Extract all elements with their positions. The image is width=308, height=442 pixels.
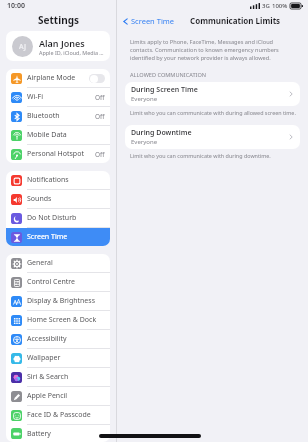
staticText: Notifications	[27, 175, 105, 185]
staticText: Limit who you can communicate with durin…	[130, 152, 271, 159]
staticText: Mobile Data	[27, 130, 105, 140]
staticText: 100%	[272, 2, 288, 10]
staticText: 3G	[262, 2, 270, 10]
button[interactable]: Notifications	[6, 171, 110, 189]
staticText: Bluetooth	[27, 111, 95, 121]
staticText: Battery	[27, 429, 105, 439]
button[interactable]: Wi-Fi	[6, 88, 110, 106]
staticText: AJ	[19, 42, 26, 52]
staticText: Communication Limits	[190, 15, 281, 26]
button[interactable]: AJ	[6, 31, 110, 61]
staticText: Everyone	[131, 138, 158, 146]
button[interactable]: Bluetooth	[6, 107, 110, 125]
staticText: 10:00	[7, 1, 25, 11]
staticText: Do Not Disturb	[27, 213, 105, 223]
staticText: Accessibility	[27, 334, 105, 344]
button[interactable]: Screen Time	[120, 13, 177, 29]
staticText: Screen Time	[27, 232, 105, 242]
button[interactable]: Apple Pencil	[6, 387, 110, 405]
staticText: Sounds	[27, 194, 105, 204]
staticText: Home Screen & Dock	[27, 315, 105, 325]
staticText: Apple Pencil	[27, 391, 105, 401]
staticText: Off	[95, 150, 105, 159]
staticText: During Screen Time	[131, 85, 198, 95]
staticText: Display & Brightness	[27, 296, 105, 306]
button[interactable]: Face ID & Passcode	[6, 406, 110, 424]
staticText: Face ID & Passcode	[27, 410, 105, 420]
staticText: Personal Hotspot	[27, 149, 95, 159]
staticText: ALLOWED COMMUNICATION	[130, 71, 207, 79]
staticText: Wi-Fi	[27, 92, 95, 102]
staticText: During Downtime	[131, 128, 192, 138]
button[interactable]: Do Not Disturb	[6, 209, 110, 227]
staticText: Settings	[38, 13, 79, 27]
staticText: Control Centre	[27, 277, 105, 287]
button[interactable]: General	[6, 254, 110, 272]
staticText: Off	[95, 93, 105, 102]
button[interactable]: During Downtime	[125, 125, 300, 149]
button[interactable]: Airplane Mode toggle	[89, 74, 105, 83]
staticText: Screen Time	[131, 16, 175, 26]
button[interactable]: Home Screen & Dock	[6, 311, 110, 329]
button[interactable]: Wallpaper	[6, 349, 110, 367]
button[interactable]: Accessibility	[6, 330, 110, 348]
staticText: Limits apply to Phone, FaceTime, Message…	[130, 38, 298, 62]
button[interactable]: Personal Hotspot	[6, 145, 110, 163]
button[interactable]: Battery	[6, 425, 110, 442]
button[interactable]: During Screen Time	[125, 82, 300, 106]
staticText: Limit who you can communicate with durin…	[130, 109, 296, 116]
staticText: Everyone	[131, 95, 158, 103]
button[interactable]: Display & Brightness	[6, 292, 110, 310]
staticText: Apple ID, iCloud, Media &…	[39, 49, 104, 56]
button[interactable]: Screen Time	[6, 228, 110, 246]
staticText: General	[27, 258, 105, 268]
staticText: Off	[95, 112, 105, 121]
button[interactable]: Mobile Data	[6, 126, 110, 144]
staticText: Wallpaper	[27, 353, 105, 363]
button[interactable]: Control Centre	[6, 273, 110, 291]
button[interactable]: Sounds	[6, 190, 110, 208]
button[interactable]: Siri & Search	[6, 368, 110, 386]
button[interactable]: Airplane Mode	[6, 69, 110, 87]
staticText: Siri & Search	[27, 372, 105, 382]
staticText: Alan Jones	[39, 37, 85, 49]
staticText: Airplane Mode	[27, 73, 89, 83]
